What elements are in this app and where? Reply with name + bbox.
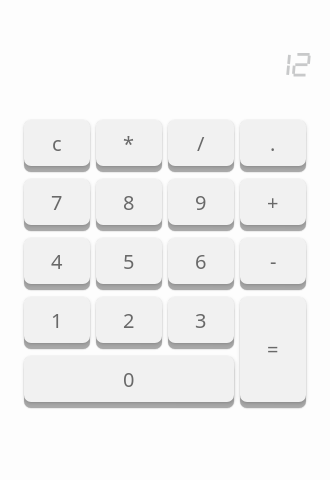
button[interactable]: 0 (24, 356, 234, 402)
button[interactable]: 7 (24, 179, 90, 225)
staticText: 9 (195, 189, 207, 216)
staticText: 0 (123, 366, 135, 393)
button[interactable]: * (96, 120, 162, 166)
staticText: 2 (123, 307, 135, 334)
staticText: 5 (123, 248, 135, 275)
button[interactable]: . (240, 120, 306, 166)
staticText: / (197, 130, 205, 157)
staticText: 6 (195, 248, 207, 275)
button[interactable]: = (240, 297, 306, 402)
staticText: . (270, 130, 276, 157)
button[interactable]: 6 (168, 238, 234, 284)
button[interactable]: 3 (168, 297, 234, 343)
button[interactable]: 5 (96, 238, 162, 284)
button[interactable]: / (168, 120, 234, 166)
button[interactable]: + (240, 179, 306, 225)
staticText: 1 (51, 307, 63, 334)
staticText: * (123, 130, 135, 157)
button[interactable]: 9 (168, 179, 234, 225)
staticText: 4 (51, 248, 63, 275)
staticText: + (267, 189, 279, 216)
staticText: 7 (51, 189, 63, 216)
button[interactable]: 2 (96, 297, 162, 343)
staticText: c (52, 130, 62, 157)
button[interactable]: 4 (24, 238, 90, 284)
staticText: = (267, 336, 279, 363)
staticText: - (270, 248, 277, 275)
button[interactable]: - (240, 238, 306, 284)
button[interactable]: 8 (96, 179, 162, 225)
staticText: 3 (195, 307, 207, 334)
button[interactable]: 1 (24, 297, 90, 343)
staticText: 8 (123, 189, 135, 216)
button[interactable]: c (24, 120, 90, 166)
